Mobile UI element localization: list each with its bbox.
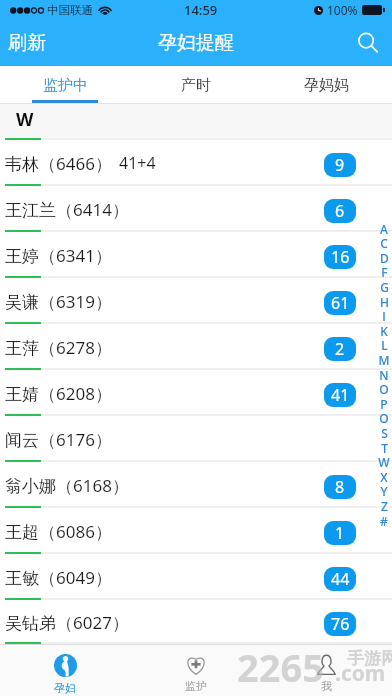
button[interactable]: Search bbox=[356, 20, 380, 66]
staticText: H bbox=[380, 294, 389, 307]
staticText: A bbox=[380, 221, 388, 234]
staticText: 孕妇 bbox=[54, 681, 76, 695]
staticText: 王超（6086） bbox=[5, 520, 112, 543]
staticText: 王婷（6341） bbox=[5, 244, 112, 267]
staticText: 16 bbox=[331, 246, 350, 268]
staticText: 2265 bbox=[237, 641, 324, 693]
staticText: 1 bbox=[335, 522, 345, 544]
staticText: O bbox=[379, 381, 389, 394]
staticText: 监护 bbox=[185, 679, 207, 693]
button[interactable]: 韦林（6466） bbox=[0, 140, 392, 186]
staticText: W bbox=[378, 454, 390, 467]
staticText: 我 bbox=[321, 679, 332, 693]
staticText: 孕妈妈 bbox=[304, 76, 349, 95]
staticText: C bbox=[380, 235, 388, 248]
staticText: Z bbox=[381, 498, 388, 511]
staticText: 41 bbox=[331, 384, 350, 406]
staticText: # bbox=[380, 513, 388, 526]
button[interactable]: 吴钻弟（6027） bbox=[0, 600, 392, 644]
staticText: K bbox=[380, 323, 388, 336]
staticText: G bbox=[380, 279, 389, 292]
button[interactable]: 监护中 bbox=[0, 66, 130, 104]
staticText: 王江兰（6414） bbox=[5, 198, 129, 221]
staticText: 41+4 bbox=[119, 152, 156, 174]
staticText: 吴谦（6319） bbox=[5, 290, 112, 313]
staticText: S bbox=[381, 425, 388, 438]
staticText: T bbox=[381, 440, 388, 453]
button[interactable]: 王敏（6049） bbox=[0, 554, 392, 600]
button[interactable]: 王超（6086） bbox=[0, 508, 392, 554]
staticText: F bbox=[381, 264, 388, 277]
staticText: 100% bbox=[327, 2, 358, 18]
button[interactable]: 孕妈妈 bbox=[261, 66, 392, 104]
staticText: 监护中 bbox=[43, 76, 88, 95]
staticText: J bbox=[382, 308, 386, 321]
button[interactable]: 王江兰（6414） bbox=[0, 186, 392, 232]
button[interactable]: 刷新 bbox=[8, 20, 46, 66]
staticText: 6 bbox=[335, 200, 345, 222]
staticText: 2 bbox=[335, 338, 345, 360]
staticText: N bbox=[379, 367, 389, 380]
staticText: D bbox=[380, 250, 389, 263]
staticText: 76 bbox=[331, 613, 350, 635]
button[interactable]: A bbox=[377, 104, 391, 644]
staticText: 产时 bbox=[181, 76, 211, 95]
button[interactable]: 翁小娜（6168） bbox=[0, 462, 392, 508]
staticText: 王敏（6049） bbox=[5, 566, 112, 589]
button[interactable]: 吴谦（6319） bbox=[0, 278, 392, 324]
button[interactable]: 王萍（6278） bbox=[0, 324, 392, 370]
button[interactable]: 闻云（6176） bbox=[0, 416, 392, 462]
staticText: .com bbox=[335, 659, 386, 688]
button[interactable]: 监护 bbox=[130, 645, 261, 696]
button[interactable]: 孕妇 bbox=[0, 645, 130, 696]
staticText: M bbox=[378, 352, 390, 365]
staticText: 44 bbox=[331, 568, 350, 590]
staticText: X bbox=[380, 469, 388, 482]
staticText: 王萍（6278） bbox=[5, 336, 112, 359]
staticText: 手游网 bbox=[347, 648, 392, 669]
staticText: Q bbox=[379, 410, 389, 423]
staticText: 刷新 bbox=[8, 31, 46, 55]
staticText: 王婧（6208） bbox=[5, 382, 112, 405]
button[interactable]: 产时 bbox=[130, 66, 261, 104]
staticText: 翁小娜（6168） bbox=[5, 474, 129, 497]
staticText: 韦林（6466） bbox=[5, 152, 112, 175]
button[interactable]: 王婧（6208） bbox=[0, 370, 392, 416]
staticText: 8 bbox=[335, 476, 345, 498]
button[interactable]: 我 bbox=[261, 645, 392, 696]
staticText: Y bbox=[380, 483, 388, 496]
staticText: W bbox=[16, 107, 34, 132]
staticText: P bbox=[380, 396, 388, 409]
staticText: 闻云（6176） bbox=[5, 428, 112, 451]
staticText: 吴钻弟（6027） bbox=[5, 611, 129, 634]
staticText: 14:59 bbox=[184, 1, 218, 19]
staticText: 中国联通 bbox=[47, 3, 93, 17]
staticText: 61 bbox=[331, 292, 350, 314]
staticText: 孕妇提醒 bbox=[158, 31, 234, 55]
staticText: L bbox=[381, 337, 388, 350]
staticText: 9 bbox=[335, 154, 345, 176]
button[interactable]: 王婷（6341） bbox=[0, 232, 392, 278]
